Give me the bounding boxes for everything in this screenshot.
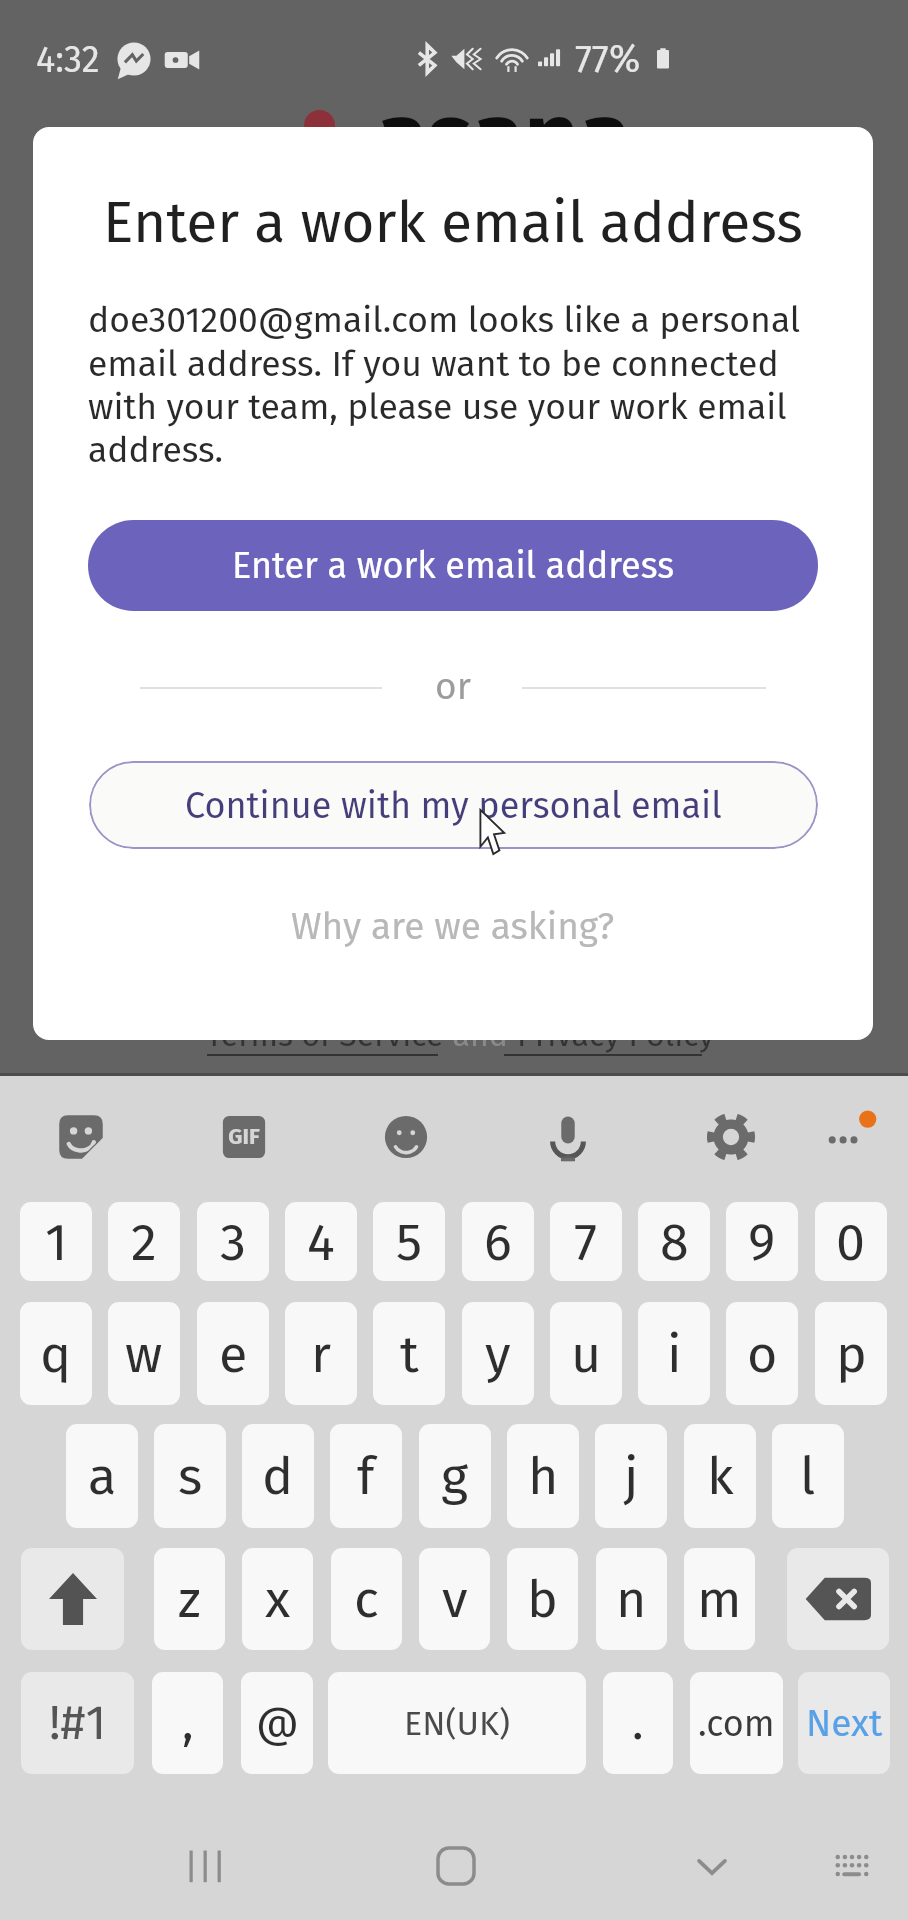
button[interactable]: !#1: [21, 1672, 134, 1774]
button[interactable]: 5: [373, 1202, 445, 1281]
staticText: a: [88, 1445, 117, 1507]
button[interactable]: Why are we asking?: [263, 891, 643, 961]
button[interactable]: 2: [108, 1202, 180, 1281]
button[interactable]: j: [595, 1424, 667, 1528]
button[interactable]: w: [108, 1302, 180, 1405]
button[interactable]: Keyboard settings: [699, 1105, 763, 1169]
button[interactable]: g: [419, 1424, 491, 1528]
button[interactable]: x: [242, 1548, 313, 1650]
staticText: and: [444, 1016, 517, 1054]
staticText: g: [441, 1445, 469, 1507]
button[interactable]: e: [197, 1302, 269, 1405]
button[interactable]: ,: [152, 1672, 223, 1774]
staticText: 6: [484, 1211, 512, 1273]
staticText: .com: [698, 1702, 775, 1745]
button[interactable]: o: [726, 1302, 798, 1405]
staticText: Continue with my personal email: [185, 784, 722, 827]
button[interactable]: Emoji: [374, 1105, 438, 1169]
staticText: v: [442, 1568, 468, 1630]
staticText: z: [178, 1568, 201, 1630]
button[interactable]: 8: [638, 1202, 710, 1281]
staticText: Enter a work email address: [33, 189, 873, 257]
button[interactable]: p: [815, 1302, 887, 1405]
button[interactable]: u: [550, 1302, 622, 1405]
button[interactable]: Change keyboard: [816, 1830, 888, 1902]
staticText: 5: [396, 1211, 423, 1273]
staticText: p: [836, 1323, 867, 1385]
button[interactable]: b: [507, 1548, 578, 1650]
staticText: n: [616, 1568, 647, 1630]
staticText: j: [624, 1445, 639, 1507]
button[interactable]: a: [66, 1424, 138, 1528]
staticText: asana: [376, 80, 631, 194]
button[interactable]: Next: [798, 1672, 890, 1774]
button[interactable]: Continue with my personal email: [89, 761, 818, 849]
staticText: 3: [220, 1211, 246, 1273]
staticText: 9: [748, 1211, 776, 1273]
button[interactable]: 9: [726, 1202, 798, 1281]
staticText: .: [632, 1694, 644, 1752]
staticText: 4: [307, 1211, 335, 1273]
staticText: doe301200@gmail.com looks like a persona…: [88, 299, 818, 471]
button[interactable]: i: [638, 1302, 710, 1405]
staticText: ,: [182, 1694, 194, 1752]
button[interactable]: m: [684, 1548, 755, 1650]
staticText: GIF: [222, 1123, 266, 1149]
button[interactable]: Shift: [21, 1548, 124, 1650]
button[interactable]: Hide keyboard: [676, 1830, 748, 1902]
button[interactable]: @: [241, 1672, 313, 1774]
staticText: o: [747, 1323, 778, 1385]
button[interactable]: 3: [197, 1202, 269, 1281]
staticText: c: [354, 1568, 379, 1630]
button[interactable]: y: [462, 1302, 534, 1405]
button[interactable]: Enter a work email address: [88, 520, 818, 611]
button[interactable]: Recent apps: [167, 1830, 239, 1902]
staticText: Why are we asking?: [291, 904, 615, 948]
staticText: 8: [660, 1211, 689, 1273]
button[interactable]: Voice input: [536, 1105, 600, 1169]
button[interactable]: Home: [420, 1830, 492, 1902]
staticText: i: [667, 1323, 682, 1385]
button[interactable]: EN(UK): [328, 1672, 586, 1774]
button[interactable]: t: [373, 1302, 445, 1405]
button[interactable]: 1: [20, 1202, 92, 1281]
button[interactable]: k: [684, 1424, 756, 1528]
staticText: f: [357, 1445, 375, 1507]
staticText: w: [125, 1323, 163, 1385]
button[interactable]: 7: [550, 1202, 622, 1281]
button[interactable]: .com: [690, 1672, 783, 1774]
button[interactable]: z: [154, 1548, 225, 1650]
button[interactable]: Backspace: [787, 1548, 889, 1650]
button[interactable]: Stickers: [49, 1105, 113, 1169]
staticText: 2: [131, 1211, 157, 1273]
button[interactable]: More options: [813, 1105, 877, 1169]
button[interactable]: 0: [815, 1202, 887, 1281]
button[interactable]: GIF keyboard: [212, 1105, 276, 1169]
staticText: s: [178, 1445, 203, 1507]
button[interactable]: d: [242, 1424, 314, 1528]
staticText: m: [697, 1568, 742, 1630]
staticText: e: [219, 1323, 248, 1385]
button[interactable]: r: [285, 1302, 357, 1405]
button[interactable]: v: [419, 1548, 490, 1650]
staticText: 77%: [575, 36, 641, 82]
button[interactable]: 4: [285, 1202, 357, 1281]
staticText: Terms of Service: [206, 1016, 444, 1054]
button[interactable]: 6: [462, 1202, 534, 1281]
staticText: Next: [806, 1701, 883, 1745]
button[interactable]: h: [507, 1424, 579, 1528]
staticText: b: [527, 1568, 558, 1630]
staticText: u: [571, 1323, 602, 1385]
button[interactable]: l: [772, 1424, 844, 1528]
staticText: !#1: [49, 1694, 107, 1752]
button[interactable]: c: [331, 1548, 402, 1650]
staticText: q: [40, 1323, 72, 1385]
button[interactable]: .: [603, 1672, 673, 1774]
button[interactable]: s: [154, 1424, 226, 1528]
staticText: or: [404, 664, 502, 708]
staticText: d: [262, 1445, 294, 1507]
button[interactable]: n: [596, 1548, 667, 1650]
button[interactable]: q: [20, 1302, 92, 1405]
button[interactable]: f: [330, 1424, 402, 1528]
staticText: Enter a work email address: [232, 544, 674, 587]
